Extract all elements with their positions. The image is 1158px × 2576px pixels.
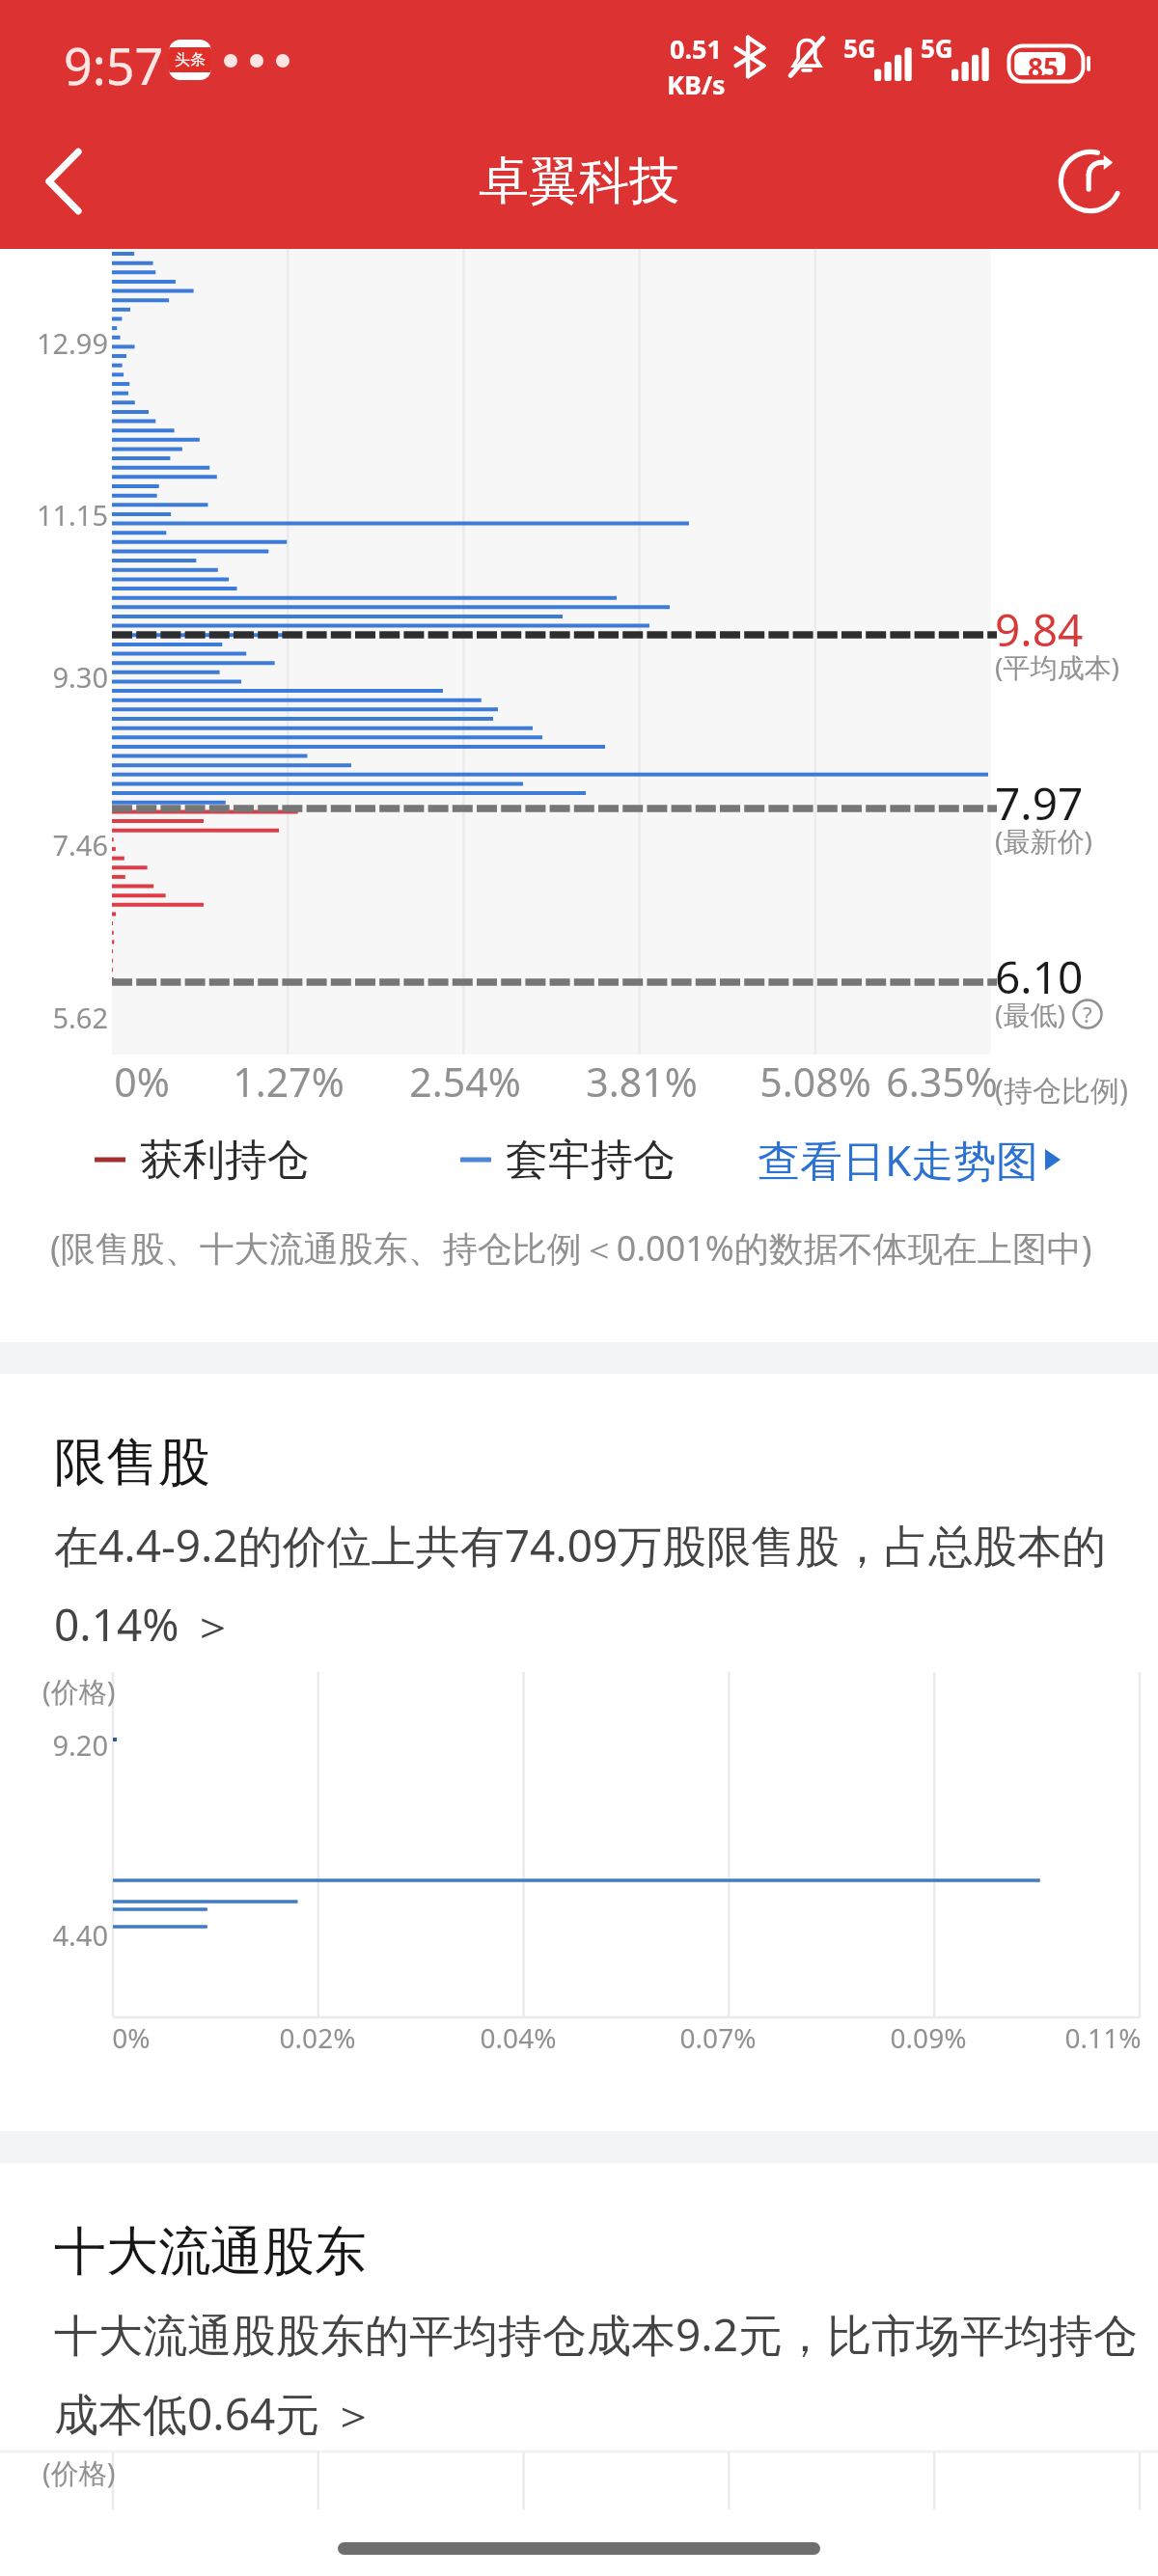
staticText: 12.99 xyxy=(0,324,108,362)
button[interactable]: 在4.4-9.2的价位上共有74.09万股限售股，占总股本的0.14% ＞ xyxy=(54,1515,1129,1655)
button[interactable]: 套牢持仓 xyxy=(460,1114,675,1205)
staticText: 十大流通股东 xyxy=(54,2219,367,2285)
staticText: 0.07% xyxy=(631,2019,805,2056)
staticText: (最低) xyxy=(995,996,1065,1032)
staticText: 5.62 xyxy=(0,999,108,1036)
staticText: 85 xyxy=(1028,49,1060,86)
staticText: 0.09% xyxy=(841,2019,1015,2056)
staticText: 5G xyxy=(921,31,953,65)
button[interactable]: Refresh xyxy=(1023,114,1158,249)
staticText: 4.40 xyxy=(0,1916,108,1954)
staticText: 3.81% xyxy=(555,1055,729,1109)
button[interactable]: 十大流通股股东的平均持仓成本9.2元，比市场平均持仓成本低0.64元 ＞ xyxy=(54,2304,1139,2444)
staticText: 11.15 xyxy=(0,496,108,534)
staticText: (平均成本) xyxy=(995,648,1119,685)
staticText: 十大流通股股东的平均持仓成本9.2元，比市场平均持仓成本低0.64元 ＞ xyxy=(54,2304,1139,2444)
staticText: 9.30 xyxy=(0,658,108,696)
staticText: 获利持仓 xyxy=(140,1134,310,1187)
staticText: 7.97 xyxy=(995,773,1084,834)
staticText: 卓翼科技 xyxy=(479,150,679,213)
staticText: 9.84 xyxy=(995,599,1084,660)
staticText: (持仓比例) xyxy=(995,1070,1128,1110)
staticText: 0% xyxy=(55,1055,229,1109)
staticText: 9.20 xyxy=(0,1726,108,1764)
staticText: (最新价) xyxy=(995,822,1092,859)
staticText: 查看日K走势图 xyxy=(758,1131,1039,1189)
staticText: 5.08% xyxy=(729,1055,902,1109)
staticText: 0.02% xyxy=(231,2019,404,2056)
button[interactable]: 查看日K走势图 xyxy=(758,1114,1061,1205)
staticText: 在4.4-9.2的价位上共有74.09万股限售股，占总股本的0.14% ＞ xyxy=(54,1515,1129,1655)
button[interactable]: 获利持仓 xyxy=(95,1114,1158,1205)
staticText: 套牢持仓 xyxy=(506,1134,675,1187)
staticText: 6.10 xyxy=(995,946,1084,1007)
staticText: (价格) xyxy=(42,1672,116,1711)
staticText: 0% xyxy=(44,2019,218,2056)
staticText: 9:57 xyxy=(64,31,164,99)
button[interactable]: Help xyxy=(1072,999,1103,1029)
staticText: 1.27% xyxy=(202,1055,375,1109)
staticText: (限售股、十大流通股东、持仓比例＜0.001%的数据不体现在上图中) xyxy=(50,1224,1158,1272)
staticText: ? xyxy=(1083,1000,1092,1028)
staticText: 限售股 xyxy=(54,1430,210,1495)
staticText: 5G xyxy=(843,31,876,65)
staticText: (价格) xyxy=(42,2453,116,2492)
button[interactable]: Back xyxy=(0,114,127,249)
staticText: 0.04% xyxy=(431,2019,605,2056)
staticText: 头条 xyxy=(175,50,206,69)
staticText: 0.11% xyxy=(1016,2019,1158,2056)
staticText: 2.54% xyxy=(378,1055,552,1109)
staticText: 7.46 xyxy=(0,826,108,863)
staticText: KB/s xyxy=(667,67,726,102)
staticText: 6.35% xyxy=(855,1055,1029,1109)
staticText: 0.51 xyxy=(670,31,722,67)
